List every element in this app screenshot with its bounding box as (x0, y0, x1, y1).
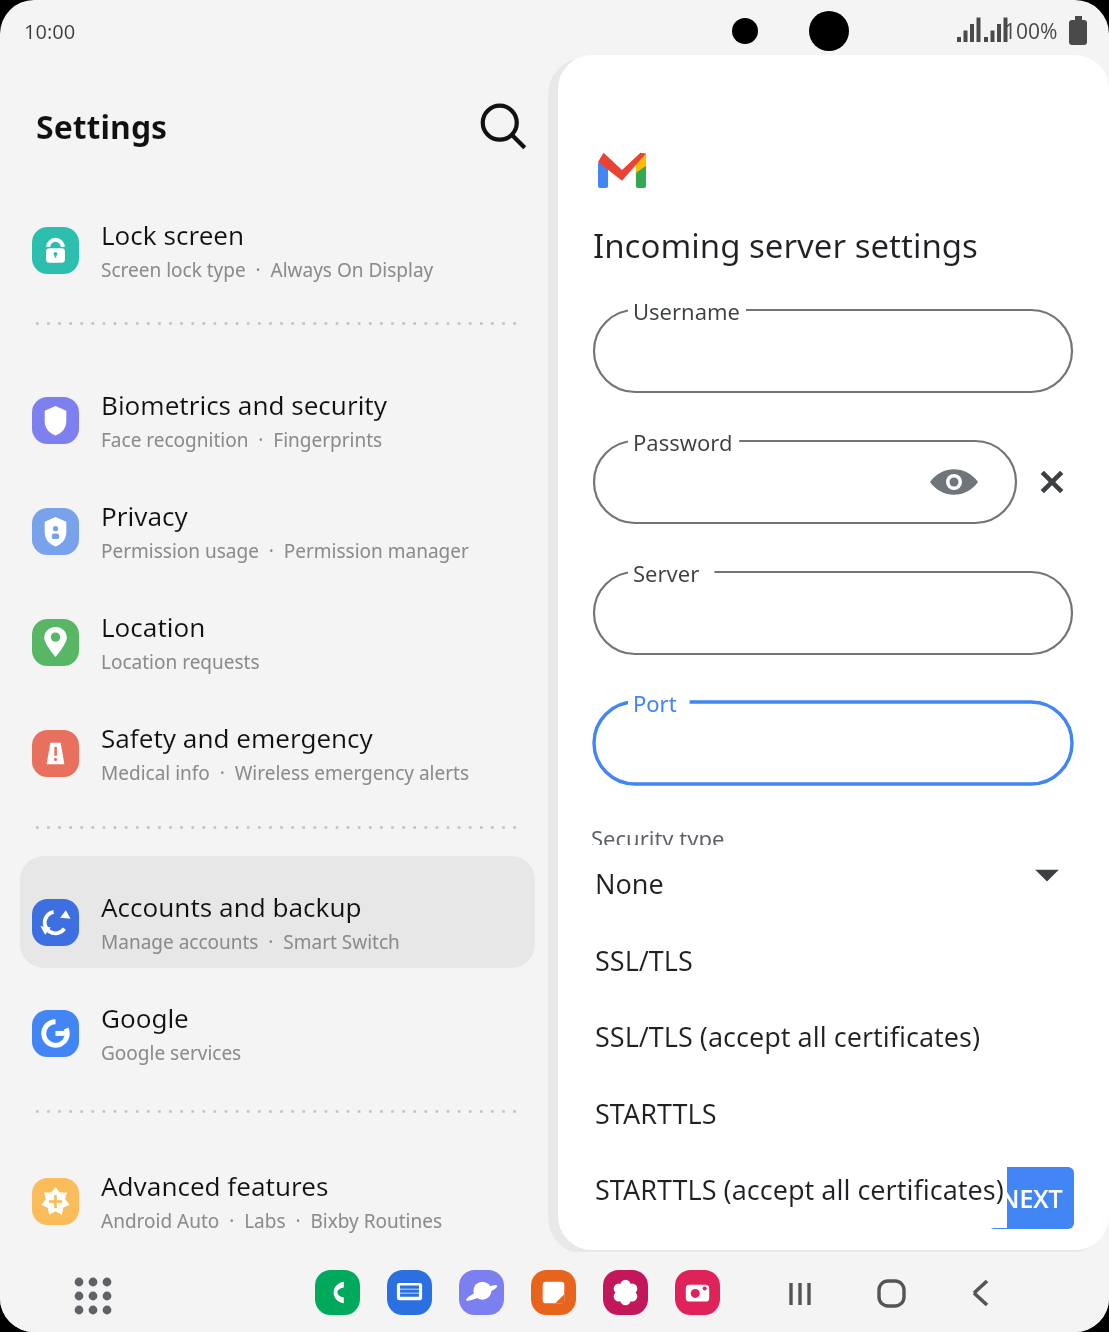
button[interactable]: STARTTLS (accept all certificates) (578, 1151, 1007, 1227)
button[interactable]: Biometrics and security (0, 370, 540, 470)
button[interactable]: Messages (387, 1270, 432, 1315)
staticText: Password (633, 427, 733, 457)
button[interactable]: SSL/TLS (accept all certificates) (578, 998, 1007, 1074)
button[interactable]: Google (0, 983, 540, 1083)
staticText: STARTTLS (595, 1095, 717, 1132)
button[interactable]: Safety and emergency (0, 703, 540, 803)
staticText: Lock screen (101, 217, 245, 252)
staticText: Screen lock type · Always On Display (101, 257, 434, 283)
button[interactable]: Phone (315, 1270, 360, 1315)
staticText: Google (101, 1000, 189, 1035)
button[interactable] (20, 856, 535, 968)
button[interactable]: STARTTLS (578, 1075, 1007, 1151)
staticText: Incoming server settings (593, 223, 978, 268)
staticText: 10:00 (24, 18, 76, 45)
button[interactable]: Apps (70, 1272, 116, 1318)
staticText: Google services (101, 1040, 242, 1066)
button[interactable]: Lock screen (0, 200, 540, 300)
button[interactable]: Camera (675, 1270, 720, 1315)
staticText: Port (633, 688, 677, 718)
button[interactable]: Notes (531, 1270, 576, 1315)
staticText: Location requests (101, 649, 260, 675)
staticText: Location (101, 609, 206, 644)
button[interactable]: Privacy (0, 481, 540, 581)
staticText: Permission usage · Permission manager (101, 538, 469, 564)
button[interactable]: Internet (459, 1270, 504, 1315)
staticText: Security type (591, 823, 725, 853)
button[interactable]: SSL/TLS (578, 922, 1007, 998)
button[interactable]: Open security type menu (1026, 853, 1068, 895)
button[interactable]: Home (868, 1270, 914, 1316)
button[interactable]: Password (594, 441, 1016, 523)
button[interactable]: Advanced features (0, 1151, 540, 1251)
staticText: Biometrics and security (101, 387, 388, 422)
staticText: Safety and emergency (101, 720, 373, 755)
staticText: Manage accounts · Smart Switch (101, 929, 400, 955)
staticText: NEXT (1000, 1181, 1063, 1215)
staticText: None (595, 865, 664, 902)
staticText: SSL/TLS (595, 942, 693, 979)
button[interactable]: None (578, 845, 1007, 921)
staticText: STARTTLS (accept all certificates) (595, 1171, 1004, 1208)
staticText: Medical info · Wireless emergency alerts (101, 760, 470, 786)
button[interactable]: Port (594, 702, 1072, 784)
button[interactable]: Gallery (603, 1270, 648, 1315)
button[interactable]: Server (594, 572, 1072, 654)
staticText: Face recognition · Fingerprints (101, 427, 383, 453)
button[interactable]: Search (476, 100, 530, 154)
button[interactable]: Username (594, 310, 1072, 392)
staticText: Advanced features (101, 1168, 329, 1203)
staticText: SSL/TLS (accept all certificates) (595, 1018, 981, 1055)
staticText: Android Auto · Labs · Bixby Routines (101, 1208, 443, 1234)
button[interactable]: Accounts and backup (0, 872, 540, 972)
staticText: Server (633, 558, 700, 588)
staticText: Privacy (101, 498, 188, 533)
staticText: Accounts and backup (101, 889, 362, 924)
button[interactable]: Back (958, 1270, 1004, 1316)
button[interactable]: NEXT (988, 1167, 1074, 1229)
button[interactable]: Clear password (1030, 460, 1074, 504)
staticText: Settings (36, 105, 168, 149)
button[interactable]: Recents (778, 1270, 824, 1316)
button[interactable]: Location (0, 592, 540, 692)
staticText: Username (633, 296, 741, 326)
staticText: 100% (1004, 17, 1058, 46)
